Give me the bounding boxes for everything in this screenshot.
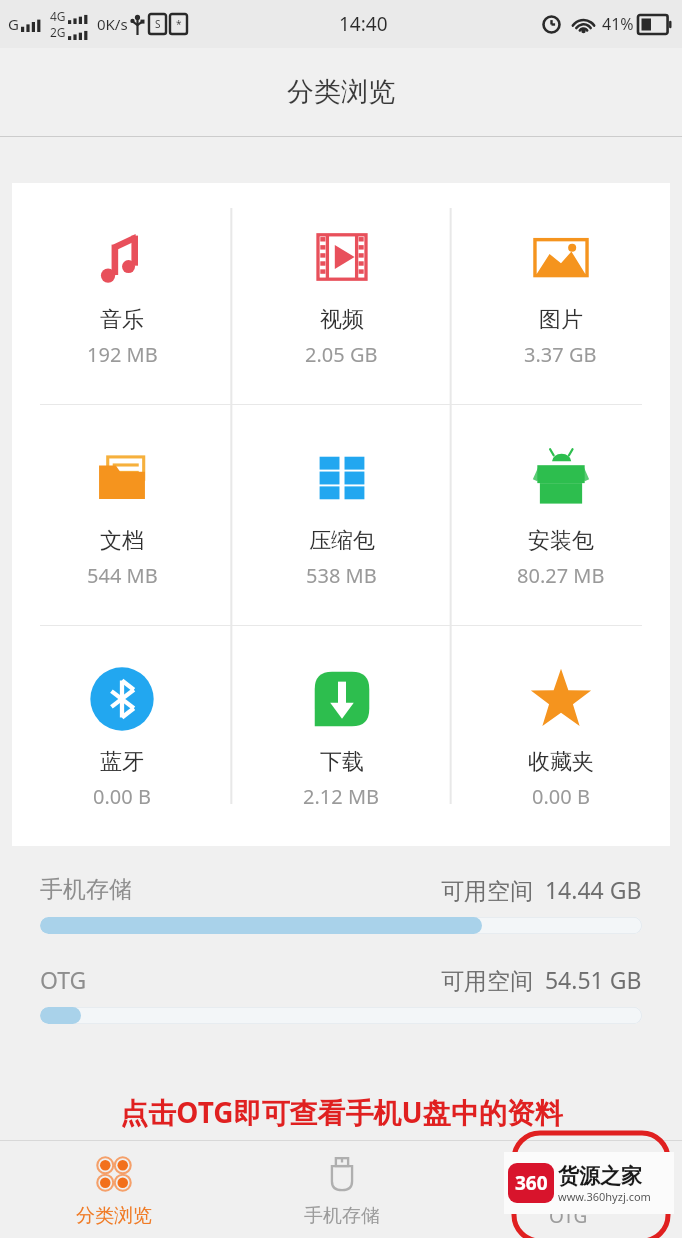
staticText: 收藏夹 [528,748,594,776]
staticText: 图片 [539,306,583,334]
staticText: 80.27 MB [517,562,605,589]
staticText: 14:40 [339,11,388,37]
staticText: OTG [40,964,87,995]
staticText: 蓝牙 [100,748,144,776]
staticText: 下载 [320,748,364,776]
other: 手机存储 [324,1156,360,1192]
staticText: 手机存储 [304,1204,380,1228]
staticText: 0.00 B [93,783,151,810]
button[interactable]: 安装包 [451,405,670,625]
staticText: S [155,17,161,31]
button[interactable]: OTG [455,1141,682,1238]
button[interactable]: 视频 [232,183,451,404]
button[interactable]: OTG [40,964,642,1024]
staticText: 点击OTG即可查看手机U盘中的资料 [120,1093,563,1131]
button[interactable]: 蓝牙 [12,626,232,846]
staticText: www.360hyzj.com [558,1189,651,1204]
button[interactable]: 文档 [12,405,232,625]
staticText: 文档 [100,527,144,555]
staticText: 货源之家 [558,1163,642,1189]
button[interactable]: 收藏夹 [451,626,670,846]
staticText: 544 MB [87,562,158,589]
staticText: 分类浏览 [287,75,395,109]
staticText: 3.37 GB [524,341,597,368]
staticText: 视频 [320,306,364,334]
button[interactable]: 下载 [232,626,451,846]
staticText: 4G [50,8,66,24]
staticText: * [176,17,182,31]
staticText: 0.00 B [532,783,590,810]
staticText: 2.05 GB [305,341,378,368]
staticText: 手机存储 [40,875,132,904]
staticText: 分类浏览 [76,1204,152,1228]
staticText: 2G [50,24,66,40]
staticText: 538 MB [306,562,377,589]
staticText: 192 MB [87,341,158,368]
staticText: 安装包 [528,527,594,555]
staticText: OTG [549,1203,588,1229]
other: OTG [550,1154,588,1192]
button[interactable]: 音乐 [12,183,232,404]
staticText: 可用空间 54.51 GB [441,964,642,995]
button[interactable]: 手机存储 [228,1141,455,1238]
staticText: 360 [515,1170,548,1196]
other: 分类浏览 [95,1155,133,1193]
button[interactable]: 手机存储 [40,874,642,934]
button[interactable]: 图片 [451,183,670,404]
staticText: 压缩包 [309,527,375,555]
staticText: 音乐 [100,306,144,334]
staticText: G [8,14,19,34]
staticText: 可用空间 14.44 GB [441,874,642,905]
button[interactable]: 分类浏览 [0,1141,228,1238]
button[interactable]: 压缩包 [232,405,451,625]
staticText: 2.12 MB [303,783,380,810]
staticText: 41% [602,13,634,35]
staticText: 0K/s [97,14,128,34]
